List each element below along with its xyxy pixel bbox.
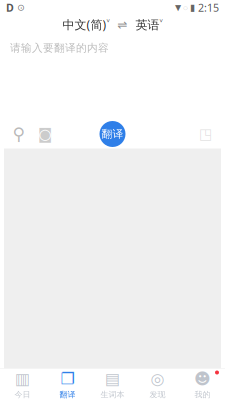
staticText: ◙ bbox=[38, 126, 52, 142]
button[interactable]: ☻ bbox=[180, 368, 225, 400]
staticText: 发现 bbox=[149, 390, 165, 399]
staticText: ▥ bbox=[15, 369, 30, 388]
button[interactable]: 英语˅ bbox=[135, 16, 162, 32]
staticText: 中文(简)˅ bbox=[62, 16, 109, 32]
button[interactable]: Voice input bbox=[6, 121, 32, 147]
button[interactable]: ❐ bbox=[45, 368, 90, 400]
staticText: 2:15 bbox=[195, 0, 219, 15]
button[interactable]: ▥ bbox=[0, 368, 45, 400]
button[interactable]: ▤ bbox=[90, 368, 135, 400]
button[interactable]: Camera translate bbox=[32, 121, 58, 147]
staticText: ⊙ bbox=[14, 2, 25, 13]
button[interactable]: Swap languages bbox=[109, 18, 135, 31]
staticText: 我的 bbox=[194, 390, 210, 399]
staticText: ◎ bbox=[150, 369, 164, 388]
button[interactable]: Clear text bbox=[193, 121, 219, 147]
staticText: ▮ bbox=[190, 2, 195, 13]
staticText: 翻译 bbox=[101, 127, 123, 140]
staticText: 生词本 bbox=[100, 390, 124, 399]
staticText: ⇌ bbox=[109, 18, 135, 31]
staticText: 英语˅ bbox=[135, 16, 162, 32]
staticText: 请输入要翻译的内容 bbox=[10, 41, 109, 55]
staticText: ⚲ bbox=[12, 124, 25, 144]
staticText: ▤ bbox=[105, 369, 120, 388]
button[interactable]: 中文(简)˅ bbox=[62, 16, 109, 32]
staticText: ◌ bbox=[181, 2, 190, 13]
button[interactable]: ◎ bbox=[135, 368, 180, 400]
staticText: D bbox=[6, 0, 14, 15]
staticText: ☻ bbox=[194, 369, 211, 388]
staticText: ❐ bbox=[60, 369, 74, 388]
button[interactable]: 翻译 bbox=[99, 121, 125, 147]
staticText: 翻译 bbox=[59, 390, 75, 399]
staticText: ▼ bbox=[175, 3, 181, 12]
staticText: 今日 bbox=[14, 390, 30, 399]
staticText: ◳ bbox=[199, 126, 213, 142]
